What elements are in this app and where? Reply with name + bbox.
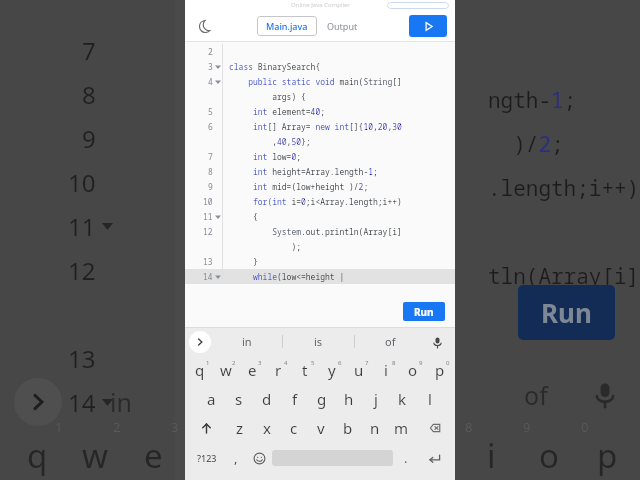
staticText: ngth-1;: [488, 86, 577, 115]
staticText: l: [428, 389, 432, 409]
staticText: {: [229, 211, 258, 222]
staticText: s: [235, 389, 243, 409]
button[interactable]: y: [318, 355, 345, 384]
staticText: y: [328, 360, 336, 380]
staticText: .length;i++): [488, 174, 640, 203]
staticText: args) {: [229, 91, 306, 102]
staticText: 8: [208, 166, 213, 177]
staticText: j: [374, 389, 378, 409]
staticText: 6: [208, 121, 213, 132]
staticText: ,40,50};: [229, 136, 311, 147]
staticText: 9: [82, 122, 96, 155]
staticText: 12: [68, 254, 96, 287]
button[interactable]: l: [416, 384, 443, 413]
staticText: 8: [82, 78, 96, 111]
staticText: 1: [206, 359, 210, 367]
staticText: of: [385, 334, 396, 349]
staticText: int height=Array.length-1;: [229, 166, 378, 177]
staticText: 0: [446, 359, 450, 367]
button[interactable]: e: [239, 355, 265, 384]
staticText: 9: [523, 418, 531, 436]
button[interactable]: r: [265, 355, 291, 384]
button[interactable]: j: [362, 384, 389, 413]
button[interactable]: is: [283, 328, 354, 355]
button[interactable]: c: [280, 413, 307, 443]
staticText: .: [404, 449, 408, 467]
button[interactable]: h: [335, 384, 362, 413]
staticText: q: [27, 433, 48, 478]
staticText: v: [317, 418, 325, 438]
button[interactable]: Voice input: [426, 331, 448, 353]
staticText: 10: [68, 166, 96, 199]
staticText: t: [302, 360, 308, 380]
button[interactable]: Main.java: [257, 16, 317, 36]
staticText: e: [144, 433, 163, 478]
button[interactable]: s: [225, 384, 253, 413]
staticText: z: [236, 418, 244, 438]
button[interactable]: g: [308, 384, 335, 413]
button[interactable]: Backspace: [415, 413, 453, 443]
button[interactable]: ?123: [189, 443, 225, 473]
button[interactable]: u: [345, 355, 372, 384]
button[interactable]: q: [187, 355, 213, 384]
staticText: ,: [234, 449, 238, 467]
staticText: i: [487, 433, 496, 478]
staticText: 9: [419, 359, 423, 367]
staticText: g: [317, 389, 327, 409]
staticText: o: [539, 433, 559, 478]
button[interactable]: d: [253, 384, 281, 413]
staticText: 7: [365, 359, 369, 367]
staticText: int element=40;: [229, 106, 325, 117]
staticText: for(int i=0;i<Array.length;i++): [229, 196, 402, 207]
button[interactable]: t: [291, 355, 318, 384]
button[interactable]: Output: [317, 16, 368, 36]
button[interactable]: ,: [225, 443, 247, 473]
staticText: )/2;: [488, 130, 564, 159]
staticText: r: [275, 360, 282, 380]
button[interactable]: Expand toolbar: [189, 331, 211, 353]
button[interactable]: .: [393, 443, 418, 473]
staticText: 0: [581, 418, 589, 436]
button[interactable]: f: [281, 384, 308, 413]
button[interactable]: Run: [403, 302, 445, 321]
button[interactable]: p: [426, 355, 453, 384]
button[interactable]: a: [197, 384, 225, 413]
staticText: 5: [311, 359, 315, 367]
staticText: int low=0;: [229, 151, 301, 162]
button[interactable]: x: [253, 413, 280, 443]
staticText: 13: [68, 342, 96, 375]
staticText: k: [398, 389, 407, 409]
button[interactable]: n: [361, 413, 388, 443]
staticText: w: [220, 360, 232, 380]
button[interactable]: Run: [409, 15, 447, 37]
button[interactable]: z: [226, 413, 253, 443]
button[interactable]: m: [388, 413, 415, 443]
button[interactable]: i: [372, 355, 399, 384]
staticText: 7: [82, 34, 96, 67]
staticText: 11: [203, 211, 213, 222]
button[interactable]: Enter: [418, 443, 451, 473]
button[interactable]: in: [211, 328, 282, 355]
button[interactable]: Emoji: [247, 443, 272, 473]
staticText: Main.java: [266, 20, 308, 32]
button[interactable]: Dark mode: [193, 14, 217, 38]
staticText: int mid=(low+height )/2;: [229, 181, 369, 192]
staticText: m: [394, 418, 409, 438]
staticText: 4: [284, 359, 288, 367]
staticText: class BinarySearch{: [229, 61, 321, 72]
button[interactable]: w: [213, 355, 239, 384]
staticText: 4: [208, 76, 213, 87]
button[interactable]: o: [399, 355, 426, 384]
staticText: 8: [465, 418, 473, 436]
button[interactable]: of: [355, 328, 426, 355]
staticText: d: [262, 389, 272, 409]
button[interactable]: v: [307, 413, 334, 443]
staticText: p: [435, 360, 445, 380]
staticText: System.out.println(Array[i]: [229, 226, 402, 237]
button[interactable]: b: [334, 413, 361, 443]
button[interactable]: Shift: [187, 413, 226, 443]
staticText: 12: [203, 226, 213, 237]
staticText: ?123: [197, 452, 217, 464]
button[interactable]: k: [389, 384, 416, 413]
